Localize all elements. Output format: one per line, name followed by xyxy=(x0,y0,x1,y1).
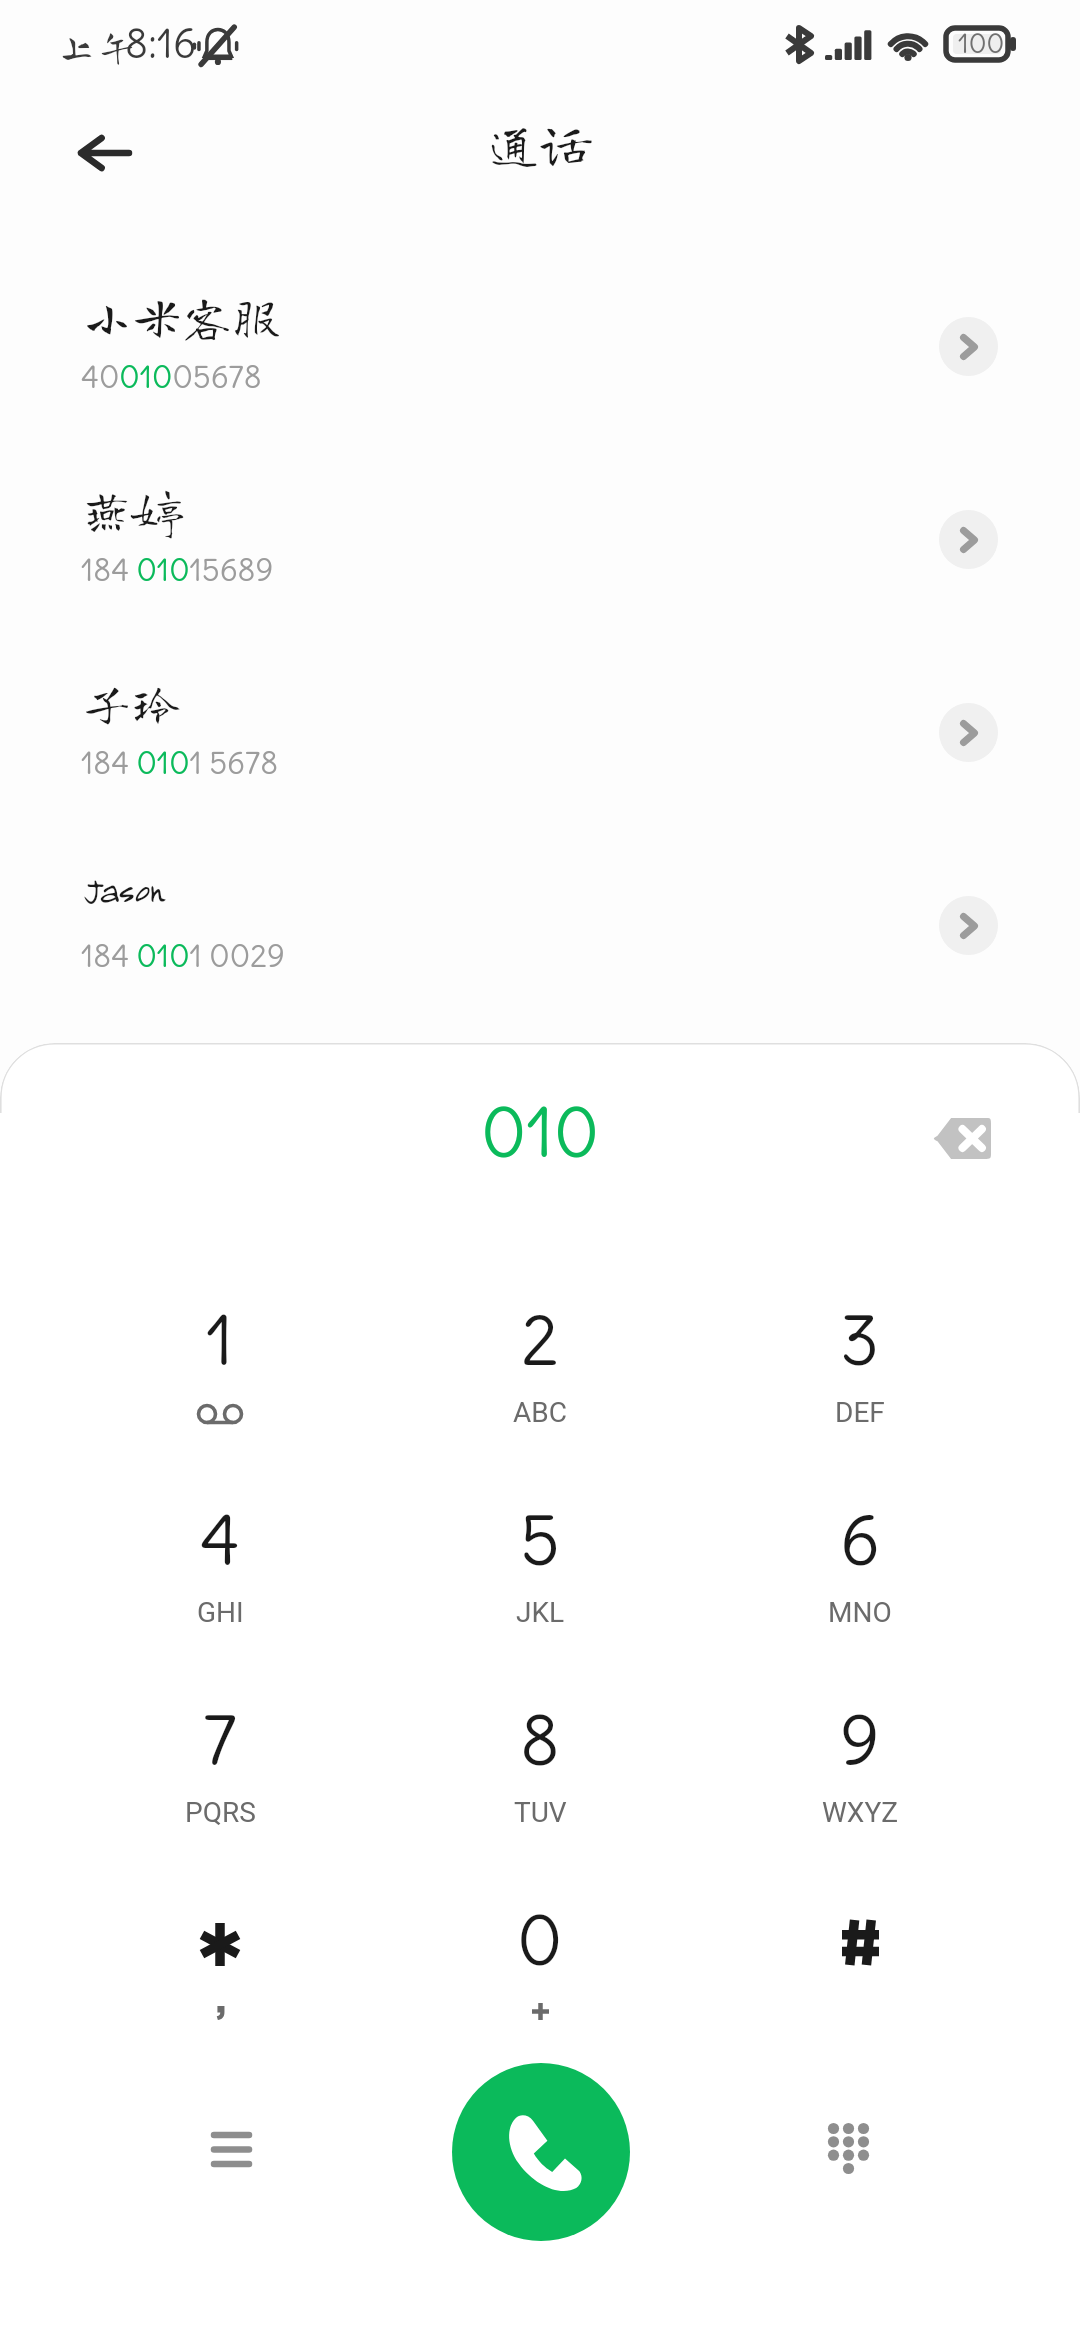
button[interactable] xyxy=(0,646,1080,831)
button[interactable]: 0 xyxy=(380,1876,700,2076)
staticText: Jason xyxy=(82,868,165,910)
staticText: 184 0101 5678 xyxy=(81,743,279,782)
button[interactable]: 4 xyxy=(60,1476,380,1676)
staticText: 通话 xyxy=(0,117,1080,169)
staticText: GHI xyxy=(197,1596,244,1629)
staticText: 上午 xyxy=(57,26,137,66)
button[interactable] xyxy=(0,839,1080,1024)
staticText: 9 xyxy=(840,1697,880,1784)
staticText: 子玲 xyxy=(82,677,182,727)
staticText: 4 xyxy=(200,1497,240,1584)
button[interactable] xyxy=(700,1876,1020,2076)
staticText: 燕婷 xyxy=(82,484,182,534)
staticText: 2 xyxy=(521,1297,559,1384)
button[interactable] xyxy=(0,260,1080,445)
button[interactable]: Call details xyxy=(939,896,998,955)
button[interactable]: Dialpad xyxy=(792,2092,904,2204)
button[interactable]: Backspace xyxy=(917,1093,1007,1183)
staticText: WXYZ xyxy=(822,1796,898,1829)
staticText: 小米客服 xyxy=(82,291,282,341)
staticText: 010 xyxy=(0,1089,1080,1176)
staticText: 184 0101 0029 xyxy=(81,936,285,975)
staticText: 8:16 xyxy=(125,19,197,69)
button[interactable]: Call log xyxy=(175,2093,287,2205)
staticText: 1 xyxy=(206,1297,234,1384)
staticText: 5 xyxy=(520,1497,560,1584)
button[interactable]: 2 xyxy=(380,1276,700,1476)
staticText: ABC xyxy=(513,1396,567,1429)
button[interactable]: 6 xyxy=(700,1476,1020,1676)
button[interactable]: 8 xyxy=(380,1676,700,1876)
button[interactable]: 7 xyxy=(60,1676,380,1876)
button[interactable]: Call details xyxy=(939,317,998,376)
staticText: 6 xyxy=(840,1497,880,1584)
staticText: 7 xyxy=(203,1697,237,1784)
staticText: 3 xyxy=(840,1297,880,1384)
staticText: MNO xyxy=(828,1596,892,1629)
button[interactable]: 3 xyxy=(700,1276,1020,1476)
staticText: JKL xyxy=(516,1596,565,1629)
staticText: 184 01015689 xyxy=(81,550,274,589)
button[interactable]: Call details xyxy=(939,510,998,569)
staticText: 0 xyxy=(517,1897,563,1984)
button[interactable]: 9 xyxy=(700,1676,1020,1876)
staticText: PQRS xyxy=(185,1796,256,1829)
button[interactable] xyxy=(60,1876,380,2076)
button[interactable]: Call xyxy=(452,2063,630,2241)
button[interactable]: Back xyxy=(53,101,157,205)
button[interactable] xyxy=(0,453,1080,638)
staticText: TUV xyxy=(514,1796,567,1829)
staticText: 4001005678 xyxy=(81,357,262,396)
staticText: 100 xyxy=(958,26,1005,60)
button[interactable]: Call details xyxy=(939,703,998,762)
staticText: DEF xyxy=(835,1396,885,1429)
button[interactable]: 5 xyxy=(380,1476,700,1676)
staticText: 8 xyxy=(520,1697,560,1784)
button[interactable]: 1 xyxy=(60,1276,380,1476)
